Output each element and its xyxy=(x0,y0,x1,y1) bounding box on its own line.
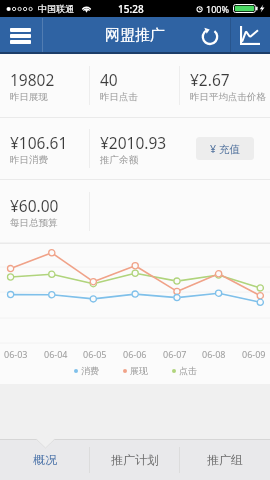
staticText: ¥106.61 xyxy=(10,132,68,153)
button[interactable]: ¥ 充值 xyxy=(196,137,254,160)
staticText: 06-05 xyxy=(83,348,107,360)
button[interactable]: 推广计划 xyxy=(90,439,180,480)
staticText: 06-09 xyxy=(242,348,266,360)
staticText: 推广组 xyxy=(207,452,243,467)
staticText: 推广计划 xyxy=(111,452,159,467)
staticText: 19802 xyxy=(10,69,55,90)
staticText: 15:28 xyxy=(118,2,144,16)
staticText: 昨日点击 xyxy=(100,91,138,103)
button[interactable]: Refresh xyxy=(190,17,230,54)
staticText: 06-08 xyxy=(202,348,226,360)
staticText: 中国联通 xyxy=(38,3,74,14)
staticText: 展现 xyxy=(130,365,148,376)
staticText: ¥60.00 xyxy=(10,195,59,216)
staticText: 推广余额 xyxy=(100,154,138,166)
button[interactable]: Statistics xyxy=(230,17,270,54)
staticText: ¥2010.93 xyxy=(100,132,167,153)
button[interactable]: 概况 xyxy=(0,439,90,480)
staticText: 06-07 xyxy=(163,348,187,360)
staticText: 点击 xyxy=(179,365,197,376)
staticText: 06-04 xyxy=(44,348,68,360)
staticText: ¥ 充值 xyxy=(210,142,240,156)
button[interactable]: Menu xyxy=(0,17,41,54)
staticText: 昨日消费 xyxy=(10,154,48,166)
staticText: 概况 xyxy=(33,452,57,467)
staticText: 消费 xyxy=(81,365,99,376)
staticText: 40 xyxy=(100,69,118,90)
staticText: 昨日展现 xyxy=(10,91,48,103)
staticText: ¥2.67 xyxy=(190,69,230,90)
staticText: 100% xyxy=(206,3,229,15)
staticText: 每日总预算 xyxy=(10,217,58,229)
button[interactable]: 推广组 xyxy=(180,439,270,480)
staticText: 06-03 xyxy=(4,348,28,360)
staticText: 网盟推广 xyxy=(105,26,165,45)
staticText: 昨日平均点击价格 xyxy=(190,91,266,103)
staticText: 06-06 xyxy=(123,348,147,360)
